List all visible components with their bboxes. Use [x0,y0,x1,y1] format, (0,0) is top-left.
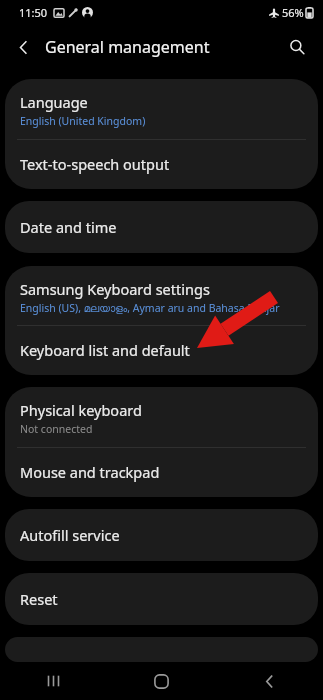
staticText: Keyboard list and default [20,340,190,360]
button[interactable]: Back [215,662,323,700]
staticText: English (US), മലയാളം, Aymar aru and Baha… [20,301,303,315]
button[interactable]: Language [5,79,318,139]
staticText: Physical keyboard [20,400,142,420]
button[interactable]: Recent apps [0,662,107,700]
button[interactable]: Search [282,32,312,62]
button[interactable]: Home [107,662,215,700]
button[interactable]: Back [8,32,38,62]
staticText: Date and time [20,217,117,237]
button[interactable]: Text-to-speech output [5,140,318,189]
button[interactable]: Physical keyboard [5,387,318,447]
staticText: Reset [20,589,58,609]
staticText: Text-to-speech output [20,154,170,174]
staticText: General management [45,36,210,58]
button[interactable]: Date and time [5,201,318,253]
button[interactable]: Samsung Keyboard settings [5,266,318,325]
staticText: Mouse and trackpad [20,462,160,482]
button[interactable]: Autofill service [5,509,318,561]
button[interactable]: Reset [5,573,318,625]
staticText: 11:50 [19,5,48,20]
staticText: Language [20,92,88,112]
button[interactable]: Mouse and trackpad [5,448,318,497]
button[interactable]: Keyboard list and default [5,326,318,375]
staticText: Autofill service [20,525,120,545]
button[interactable]: Contact us [5,637,318,662]
staticText: Samsung Keyboard settings [20,279,210,299]
staticText: Not connected [20,422,93,436]
staticText: 56% [282,5,304,20]
staticText: English (United Kingdom) [20,114,146,128]
